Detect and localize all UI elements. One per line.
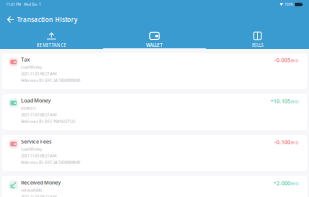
- button[interactable]: BILLS: [206, 30, 309, 49]
- staticText: 2021-11-03 08:27 AM: [21, 153, 57, 158]
- button[interactable]: Tax: [2, 53, 307, 89]
- staticText: Reference ID: BFC99410237122: [21, 119, 75, 124]
- staticText: BENEFIT: [21, 105, 36, 111]
- staticText: 11:41 PM: [6, 2, 21, 7]
- staticText: Reference ID: BFC2A73030000030: [21, 78, 80, 83]
- staticText: -0.005: [274, 56, 290, 64]
- button[interactable]: WALLET: [103, 30, 206, 49]
- staticText: Tax: [21, 56, 30, 63]
- button[interactable]: Load Money: [2, 94, 307, 130]
- staticText: BHD: [291, 58, 299, 63]
- staticText: Load Money: [21, 146, 42, 152]
- staticText: BHD: [291, 140, 299, 145]
- staticText: Wed Dec 1: [24, 2, 41, 7]
- staticText: Reference ID: BFC2A73030000030: [21, 160, 80, 165]
- staticText: -0.100: [274, 138, 290, 146]
- staticText: BHD: [291, 99, 299, 104]
- staticText: BHD: [291, 181, 299, 186]
- staticText: Load Money: [21, 97, 51, 104]
- staticText: BILLS: [252, 42, 263, 48]
- staticText: Received Money: [21, 179, 61, 186]
- staticText: Load Money: [21, 64, 42, 70]
- button[interactable]: Back: [4, 10, 17, 28]
- staticText: +2.000: [273, 179, 290, 187]
- button[interactable]: REMITTANCE: [0, 30, 103, 49]
- button[interactable]: Received Money: [2, 176, 307, 197]
- staticText: Service Fees: [21, 138, 52, 145]
- staticText: 2021-11-03 08:27 AM: [21, 194, 57, 197]
- button[interactable]: Service Fees: [2, 135, 307, 171]
- staticText: 2021-11-03 08:27 AM: [21, 112, 57, 117]
- staticText: 100%: [284, 2, 293, 7]
- staticText: WALLET: [146, 42, 163, 48]
- staticText: +10.105: [270, 97, 290, 105]
- staticText: not available: [21, 187, 42, 193]
- staticText: Transaction History: [17, 15, 77, 24]
- staticText: 2021-11-03 08:27 AM: [21, 71, 57, 76]
- staticText: REMITTANCE: [36, 42, 66, 48]
